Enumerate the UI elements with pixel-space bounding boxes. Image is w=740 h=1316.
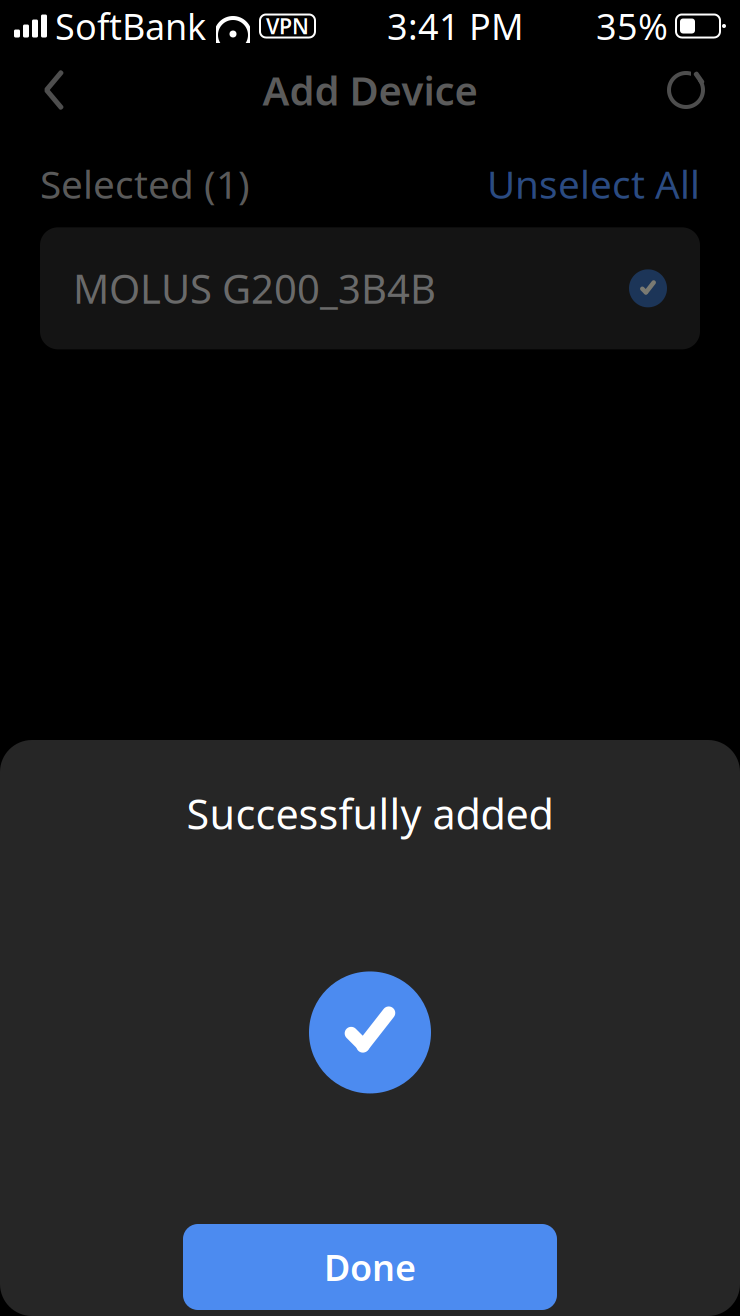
staticText: Add Device: [262, 63, 477, 116]
button[interactable]: Done: [183, 1224, 557, 1310]
staticText: 35%: [596, 2, 668, 50]
staticText: MOLUS G200_3B4B: [73, 262, 436, 315]
staticText: Selected (1): [40, 158, 250, 209]
staticText: SoftBank: [55, 2, 206, 50]
button[interactable]: Back: [22, 58, 86, 122]
staticText: Done: [324, 1243, 416, 1291]
staticText: Unselect All: [487, 158, 700, 209]
staticText: VPN: [266, 12, 309, 40]
button[interactable]: MOLUS G200_3B4B: [40, 227, 700, 349]
button[interactable]: Unselect All: [487, 158, 700, 209]
staticText: Successfully added: [186, 786, 553, 841]
staticText: 3:41 PM: [387, 2, 524, 50]
button[interactable]: Refresh: [654, 58, 718, 122]
